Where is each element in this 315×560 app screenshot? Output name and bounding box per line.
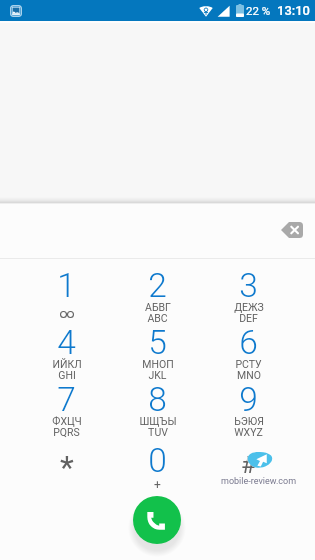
staticText: 13:10 [277,3,311,18]
button[interactable]: 0 [112,438,203,495]
staticText: 7 [57,380,76,419]
staticText: 8 [148,380,167,419]
button[interactable]: 9 [203,377,294,434]
staticText: ABC [147,312,168,324]
button[interactable]: 7 [21,377,112,434]
staticText: 22 % [246,4,271,17]
button[interactable]: * [21,438,112,495]
staticText: АБВГ [145,301,171,313]
button[interactable]: 2 [112,263,203,320]
staticText: * [60,448,74,486]
staticText: 1 [57,266,76,305]
staticText: MNO [237,369,261,381]
staticText: ШЩЪЫ [139,415,177,427]
staticText: 9 [239,380,258,419]
staticText: 2 [148,266,167,305]
staticText: ДЕЖЗ [234,301,264,313]
button[interactable]: # [203,438,294,495]
button[interactable]: Backspace [276,214,308,246]
staticText: МНОП [142,358,174,370]
button[interactable]: 1 [21,263,112,320]
staticText: + [154,478,161,492]
staticText: WXYZ [234,426,263,438]
staticText: DEF [239,312,258,324]
staticText: 4 [57,323,76,362]
button[interactable]: 8 [112,377,203,434]
staticText: ИЙКЛ [52,358,82,370]
staticText: РСТУ [235,358,262,370]
staticText: ЬЭЮЯ [234,415,264,427]
button[interactable]: 5 [112,320,203,377]
staticText: JKL [148,369,167,381]
staticText: PQRS [53,426,80,438]
button[interactable]: Call [133,496,181,544]
staticText: 5 [148,323,167,362]
staticText: ФХЦЧ [52,415,82,427]
staticText: mobile-review.com [221,476,297,487]
staticText: # [241,451,256,479]
button[interactable]: 4 [21,320,112,377]
staticText: 0 [148,441,167,480]
staticText: 6 [239,323,258,362]
staticText: 3 [239,266,258,305]
staticText: GHI [58,369,76,381]
staticText: TUV [148,426,168,438]
button[interactable]: 6 [203,320,294,377]
button[interactable]: 3 [203,263,294,320]
